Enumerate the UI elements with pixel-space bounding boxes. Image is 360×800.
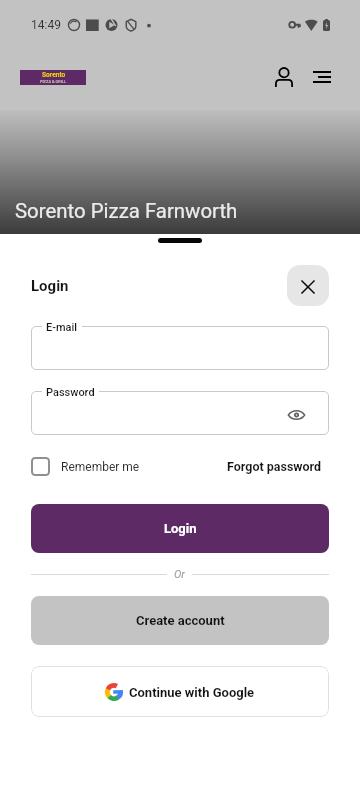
- staticText: Remember me: [61, 460, 140, 474]
- staticText: Sorento Pizza Farnworth: [15, 199, 238, 223]
- button[interactable]: Remember me: [31, 457, 140, 476]
- button[interactable]: Account: [269, 62, 299, 92]
- button[interactable]: Create account: [31, 596, 329, 645]
- staticText: Password: [46, 386, 95, 399]
- staticText: E-mail: [46, 321, 78, 334]
- staticText: PIZZA & GRILL: [40, 79, 67, 84]
- button[interactable]: Forgot password: [227, 459, 329, 474]
- button[interactable]: Login: [31, 504, 329, 553]
- button[interactable]: Close: [287, 265, 329, 306]
- staticText: Forgot password: [227, 459, 322, 474]
- staticText: Login: [164, 521, 197, 536]
- staticText: Login: [31, 277, 69, 295]
- button[interactable]: Show password: [283, 402, 309, 428]
- button[interactable]: Menu: [307, 62, 337, 92]
- staticText: Or: [174, 568, 185, 581]
- staticText: Create account: [136, 613, 225, 628]
- staticText: Sorento: [42, 71, 66, 79]
- staticText: Continue with Google: [129, 685, 255, 700]
- button[interactable]: Continue with Google: [31, 666, 329, 717]
- button[interactable]: Sorento logo: [20, 70, 86, 85]
- staticText: 14:49: [31, 18, 61, 32]
